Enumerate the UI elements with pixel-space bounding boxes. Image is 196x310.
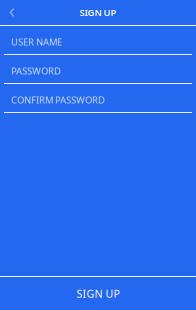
button[interactable]: SIGN UP	[0, 276, 196, 310]
button[interactable]: CONFIRM PASSWORD	[0, 84, 196, 113]
staticText: SIGN UP	[76, 286, 119, 301]
staticText: PASSWORD	[11, 65, 61, 77]
button[interactable]: Back	[2, 0, 22, 25]
button[interactable]: USER NAME	[0, 26, 196, 55]
staticText: SIGN UP	[79, 6, 116, 19]
staticText: USER NAME	[11, 36, 62, 48]
staticText: CONFIRM PASSWORD	[11, 94, 105, 106]
button[interactable]: PASSWORD	[0, 55, 196, 84]
